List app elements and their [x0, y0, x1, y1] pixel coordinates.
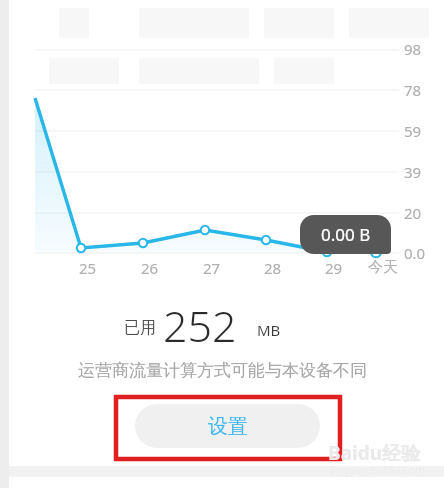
- staticText: 已用: [124, 318, 156, 338]
- staticText: 20: [404, 203, 422, 223]
- staticText: 252: [163, 296, 237, 348]
- button[interactable]: 设置: [135, 404, 320, 448]
- staticText: 运营商流量计算方式可能与本设备不同: [78, 360, 367, 381]
- staticText: 25: [79, 258, 97, 278]
- staticText: 29: [325, 258, 343, 278]
- staticText: 今天: [368, 258, 398, 277]
- staticText: 28: [264, 258, 282, 278]
- staticText: 0.0: [404, 243, 426, 263]
- staticText: 设置: [208, 414, 248, 439]
- staticText: jingyan.baidu.com: [330, 462, 426, 477]
- staticText: 39: [404, 162, 422, 182]
- staticText: 27: [203, 258, 221, 278]
- staticText: MB: [257, 320, 281, 340]
- staticText: 26: [141, 258, 159, 278]
- staticText: 59: [404, 121, 422, 141]
- staticText: 0.00 B: [321, 223, 371, 246]
- staticText: 78: [404, 80, 422, 100]
- staticText: 98: [404, 39, 422, 59]
- staticText: Baidu经验: [328, 440, 421, 464]
